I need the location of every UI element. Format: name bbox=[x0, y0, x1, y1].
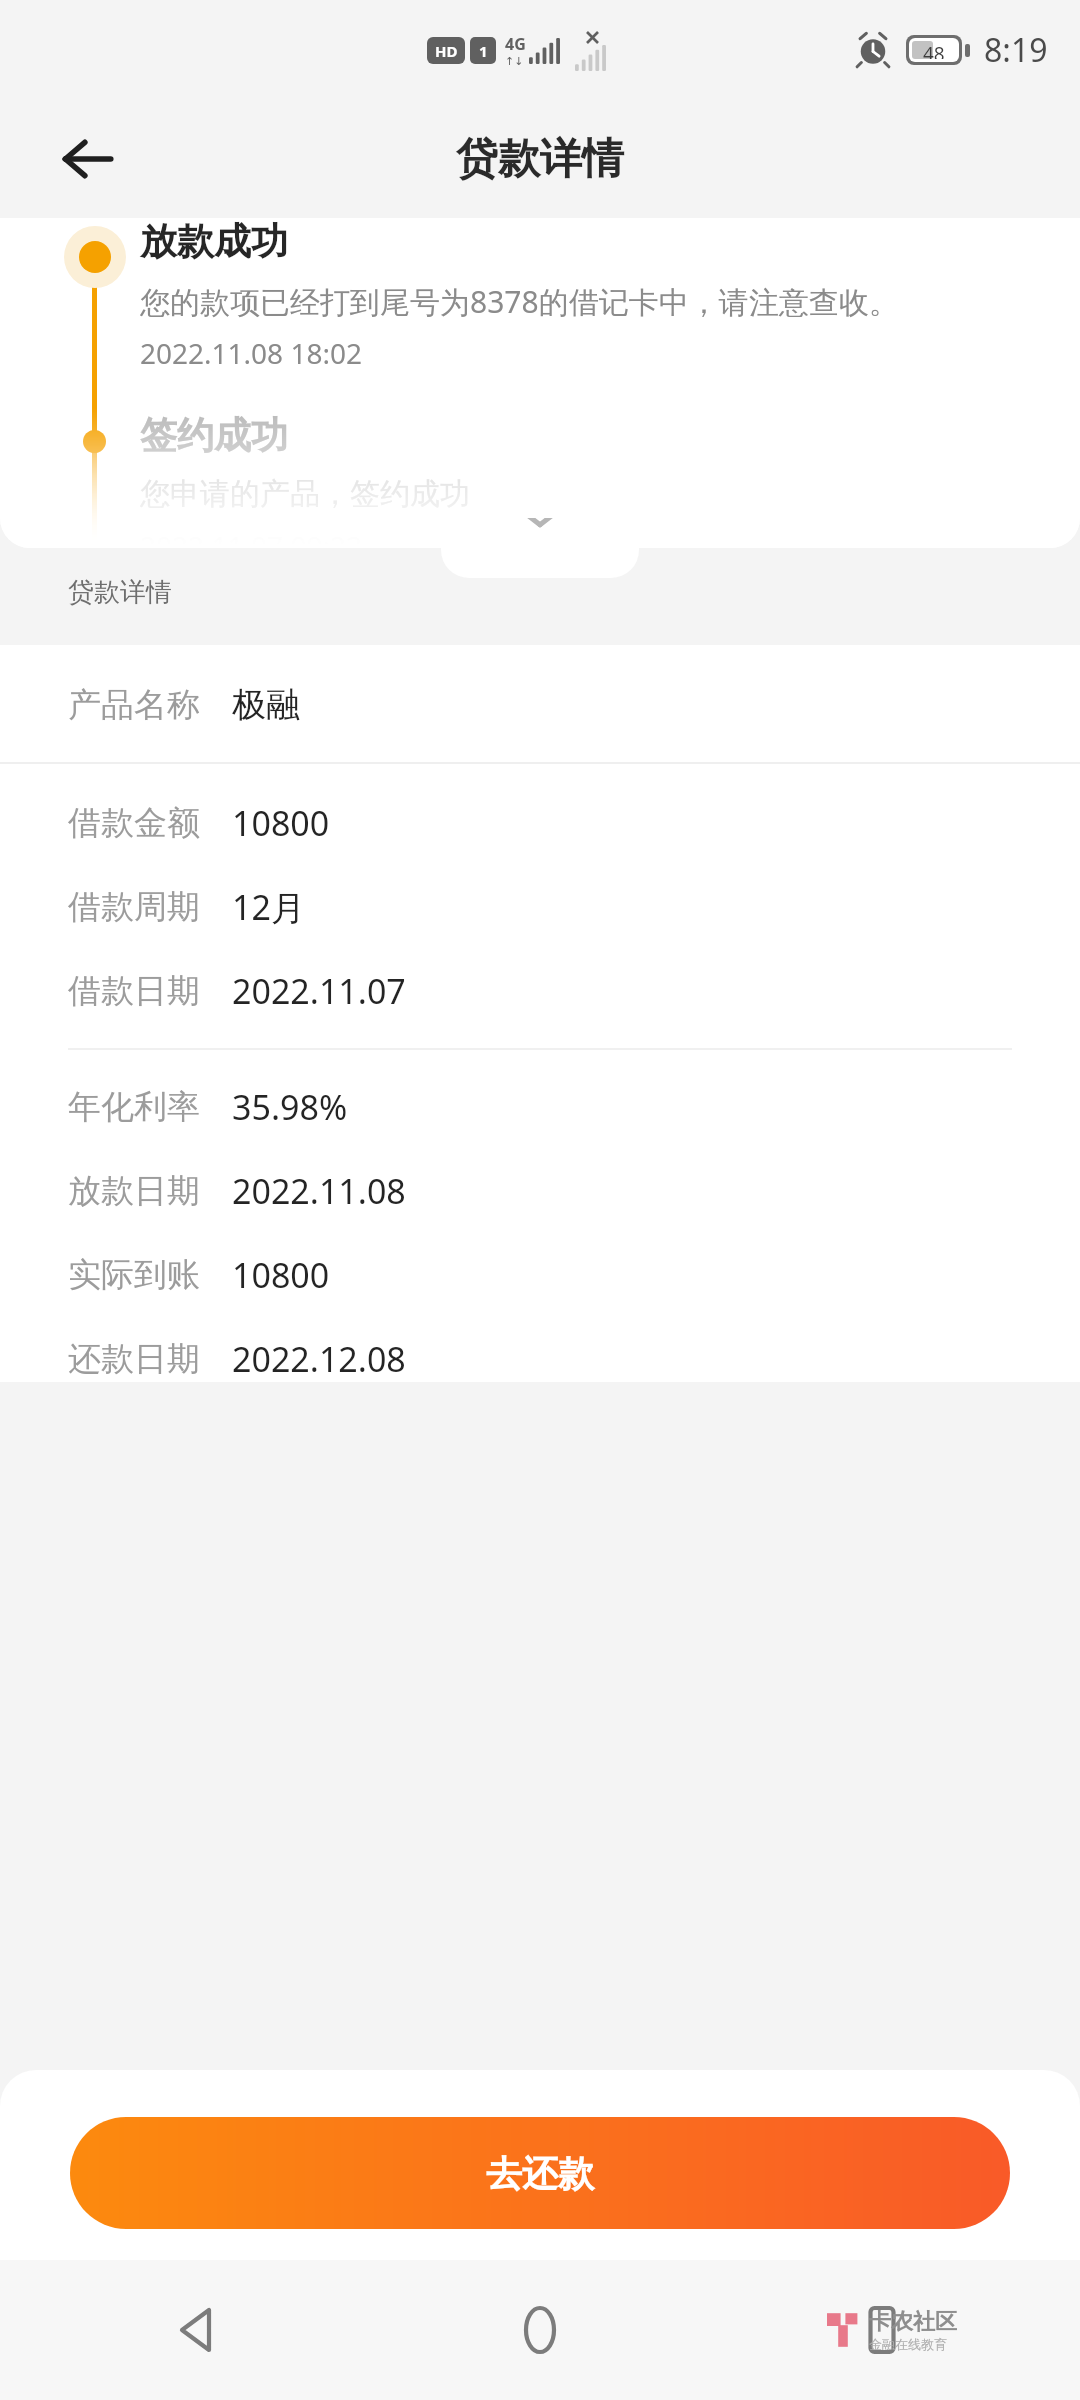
staticText: 2022.11.07 bbox=[232, 968, 406, 1014]
staticText: 2022.11.08 bbox=[232, 1168, 406, 1214]
staticText: 借款周期 bbox=[68, 886, 200, 928]
staticText: 8:19 bbox=[984, 28, 1048, 72]
staticText: 放款日期 bbox=[68, 1170, 200, 1212]
staticText: 产品名称 bbox=[68, 684, 200, 726]
staticText: 金融在线教育 bbox=[869, 2336, 947, 2352]
button[interactable]: Expand bbox=[441, 518, 639, 578]
button[interactable]: Home bbox=[492, 2282, 588, 2378]
staticText: HD bbox=[435, 41, 458, 61]
button[interactable]: 去还款 bbox=[70, 2117, 1010, 2229]
staticText: 35.98% bbox=[232, 1084, 348, 1130]
staticText: 12月 bbox=[232, 884, 305, 930]
staticText: 您申请的产品，签约成功 bbox=[140, 475, 470, 513]
staticText: 贷款详情 bbox=[456, 133, 624, 186]
staticText: 借款日期 bbox=[68, 970, 200, 1012]
staticText: 实际到账 bbox=[68, 1254, 200, 1296]
staticText: 贷款详情 bbox=[68, 576, 172, 609]
staticText: ↑↓ bbox=[505, 55, 524, 68]
staticText: 2022.11.08 18:02 bbox=[140, 334, 362, 372]
staticText: 签约成功 bbox=[140, 412, 288, 459]
button[interactable]: Back bbox=[150, 2282, 246, 2378]
button[interactable]: Recents bbox=[834, 2282, 930, 2378]
staticText: 48 bbox=[923, 41, 945, 59]
staticText: 10800 bbox=[232, 800, 330, 846]
staticText: 年化利率 bbox=[68, 1086, 200, 1128]
staticText: 卡农社区 bbox=[869, 2308, 957, 2336]
staticText: 2022.12.08 bbox=[232, 1336, 406, 1382]
other: Alarm bbox=[856, 33, 890, 67]
staticText: 还款日期 bbox=[68, 1338, 200, 1380]
staticText: 10800 bbox=[232, 1252, 330, 1298]
staticText: 4G bbox=[505, 33, 526, 55]
staticText: 借款金额 bbox=[68, 802, 200, 844]
staticText: 极融 bbox=[232, 683, 300, 726]
staticText: 您的款项已经打到尾号为8378的借记卡中，请注意查收。 bbox=[140, 281, 899, 322]
button[interactable]: Back bbox=[48, 120, 126, 198]
staticText: 放款成功 bbox=[140, 218, 288, 265]
staticText: 去还款 bbox=[486, 2151, 594, 2196]
staticText: 1 bbox=[479, 41, 488, 61]
